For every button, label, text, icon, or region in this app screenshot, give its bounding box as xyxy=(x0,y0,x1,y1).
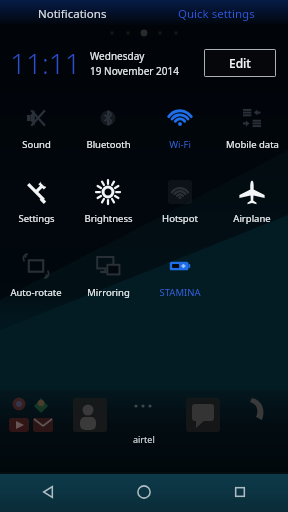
button[interactable]: Auto-rotate xyxy=(0,242,72,316)
staticText: 19 November 2014 xyxy=(90,64,179,78)
staticText: airtel xyxy=(133,433,155,445)
staticText: Settings xyxy=(18,212,55,225)
staticText: 11:11 xyxy=(10,44,81,82)
button[interactable]: Settings xyxy=(0,168,72,242)
staticText: Quick settings xyxy=(178,6,255,22)
staticText: Brightness xyxy=(84,212,133,225)
button[interactable]: Hotspot xyxy=(144,168,216,242)
button[interactable]: Edit xyxy=(204,49,276,77)
staticText: Edit xyxy=(229,55,251,71)
button[interactable]: Notifications xyxy=(0,0,144,28)
button[interactable]: Mirroring xyxy=(72,242,144,316)
button[interactable]: Sound xyxy=(0,94,72,168)
staticText: Notifications xyxy=(38,6,107,22)
button[interactable]: Mobile data xyxy=(216,94,288,168)
staticText: Auto-rotate xyxy=(10,286,62,299)
staticText: Airplane xyxy=(233,212,271,225)
staticText: Hotspot xyxy=(162,212,198,225)
staticText: Wednesday xyxy=(90,49,145,63)
button[interactable]: Back xyxy=(0,472,96,512)
button[interactable]: Wi-Fi xyxy=(144,94,216,168)
staticText: Wi-Fi xyxy=(169,138,191,151)
button[interactable]: Bluetooth xyxy=(72,94,144,168)
button[interactable]: Recent apps xyxy=(192,472,288,512)
staticText: STAMINA xyxy=(159,286,201,299)
button[interactable]: Home xyxy=(96,472,192,512)
button[interactable]: Quick settings xyxy=(144,0,288,28)
button[interactable]: STAMINA xyxy=(144,242,216,316)
staticText: Bluetooth xyxy=(86,138,131,151)
staticText: Sound xyxy=(22,138,51,151)
button[interactable]: Brightness xyxy=(72,168,144,242)
staticText: Mobile data xyxy=(226,138,279,151)
staticText: Mirroring xyxy=(87,286,130,299)
button[interactable]: Airplane xyxy=(216,168,288,242)
